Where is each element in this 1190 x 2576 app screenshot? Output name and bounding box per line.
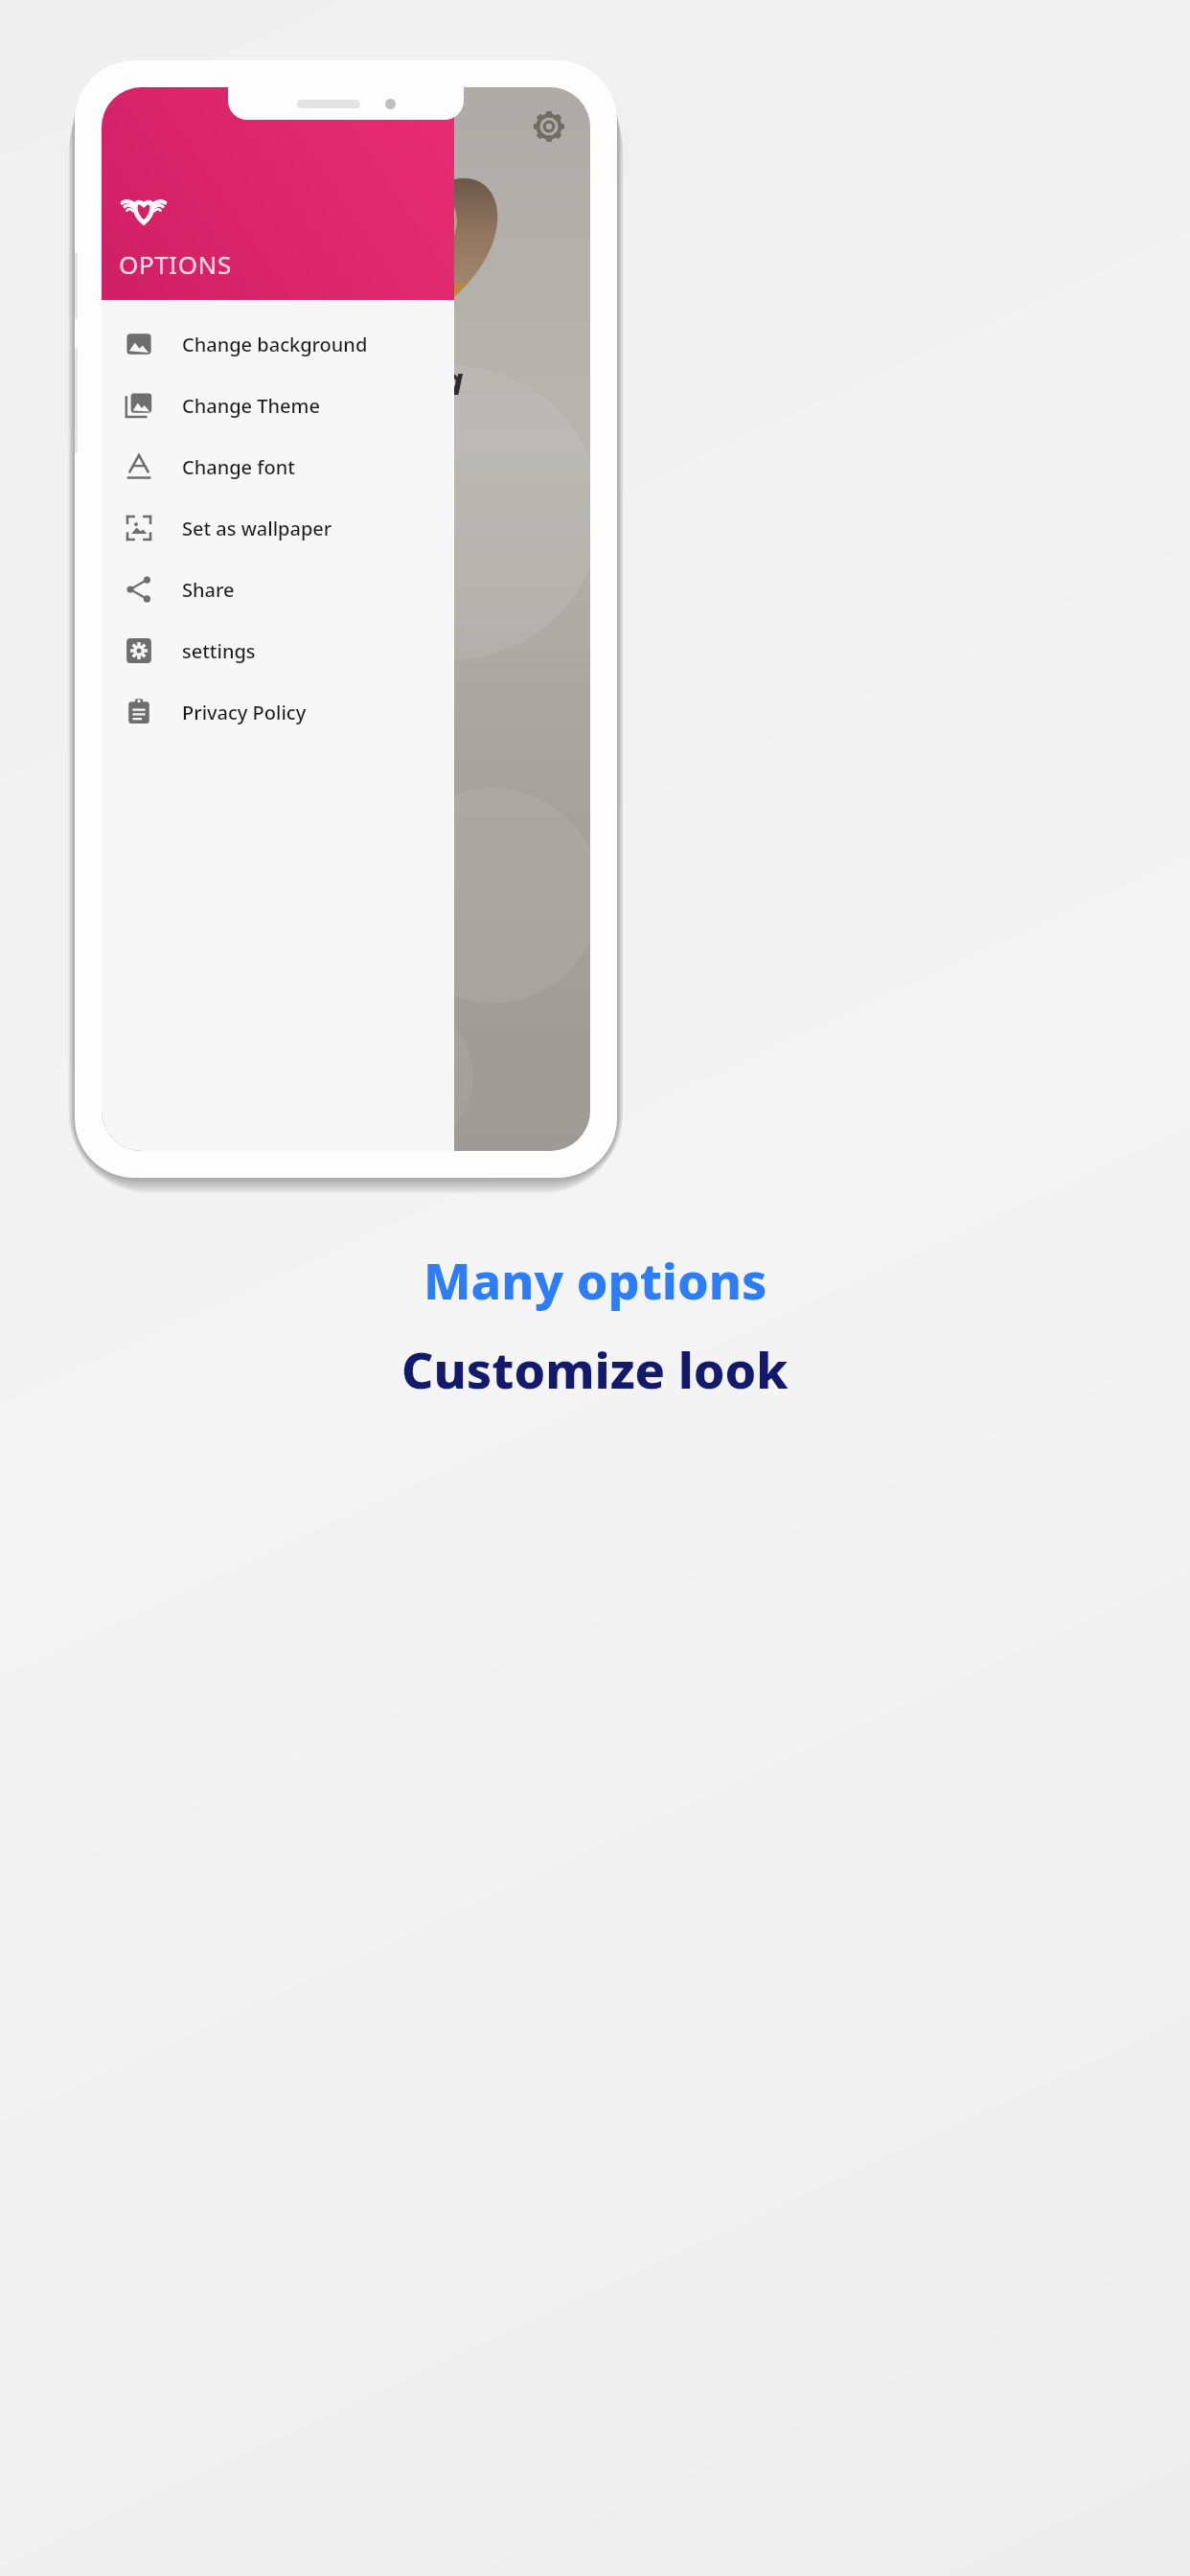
button[interactable]: Change background bbox=[102, 313, 454, 375]
button[interactable]: settings bbox=[102, 620, 454, 681]
staticText: settings bbox=[182, 638, 256, 664]
staticText: Change Theme bbox=[182, 393, 320, 419]
staticText: Many options bbox=[423, 1246, 767, 1314]
button[interactable]: Settings bbox=[527, 104, 571, 149]
staticText: Set as wallpaper bbox=[182, 516, 332, 541]
staticText: OPTIONS bbox=[119, 247, 232, 281]
button[interactable]: Privacy Policy bbox=[102, 681, 454, 743]
staticText: Privacy Policy bbox=[182, 700, 307, 725]
staticText: Emma bbox=[351, 354, 464, 405]
button[interactable]: Set as wallpaper bbox=[102, 497, 454, 559]
staticText: Change background bbox=[182, 332, 368, 357]
staticText: Change font bbox=[182, 454, 295, 480]
staticText: Customize look bbox=[401, 1335, 789, 1403]
staticText: Share bbox=[182, 577, 235, 603]
button[interactable]: Share bbox=[102, 559, 454, 620]
button[interactable]: Change Theme bbox=[102, 375, 454, 436]
button[interactable]: Change font bbox=[102, 436, 454, 497]
